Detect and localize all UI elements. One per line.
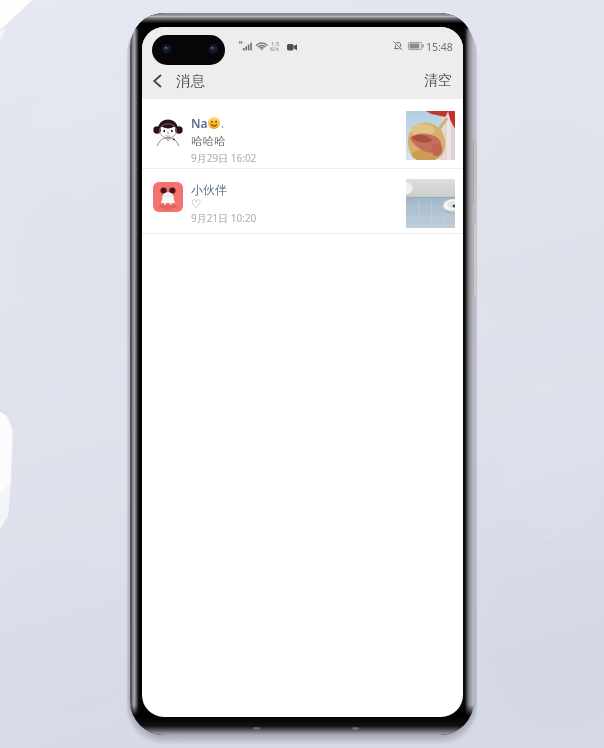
other: Back xyxy=(149,72,167,90)
button[interactable]: 小伙伴 xyxy=(142,169,463,233)
staticText: Na xyxy=(191,115,208,131)
button[interactable]: 清空 xyxy=(413,63,463,99)
staticText: 、 xyxy=(220,116,231,130)
staticText: 消息 xyxy=(176,72,205,90)
staticText: 清空 xyxy=(424,72,452,90)
staticText: K/s xyxy=(270,45,279,53)
staticText: 9月29日 16:02 xyxy=(191,151,257,165)
button[interactable]: Na xyxy=(142,99,463,168)
staticText: 哈哈哈 xyxy=(191,134,226,148)
staticText: 15:48 xyxy=(426,40,453,54)
staticText: 9月21日 10:20 xyxy=(191,211,257,225)
staticText: 小伙伴 xyxy=(191,182,227,197)
staticText: 1.5 xyxy=(271,40,280,48)
staticText: ♡ xyxy=(191,197,202,210)
button[interactable]: Back xyxy=(142,63,213,99)
